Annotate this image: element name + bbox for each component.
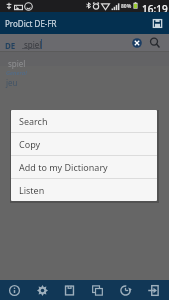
button[interactable]: Settings	[33, 281, 51, 299]
button[interactable]: Info	[5, 281, 23, 299]
staticText: General	[6, 69, 27, 77]
button[interactable]: Clipboard	[88, 281, 106, 299]
staticText: 80%	[121, 3, 132, 10]
button[interactable]: Bookmarks	[60, 281, 78, 299]
button[interactable]: Save	[151, 17, 164, 30]
button[interactable]: Add to my Dictionary	[11, 156, 157, 178]
button[interactable]: Copy	[11, 133, 157, 155]
staticText: jeu	[6, 77, 18, 88]
staticText: DE	[5, 40, 16, 51]
button[interactable]: Refresh	[116, 281, 134, 299]
staticText: Add to my Dictionary	[19, 161, 108, 173]
button[interactable]: Clear	[130, 36, 144, 50]
button[interactable]: Search	[148, 36, 162, 50]
staticText: spiel	[24, 39, 42, 50]
button[interactable]: Listen	[11, 179, 157, 201]
staticText: Copy	[19, 138, 41, 150]
staticText: spiel	[8, 58, 26, 69]
staticText: Search	[19, 115, 48, 127]
staticText: 16:19	[142, 2, 168, 14]
button[interactable]: Exit	[144, 281, 162, 299]
staticText: Listen	[19, 184, 45, 196]
button[interactable]: Search	[11, 110, 157, 132]
staticText: ProDict DE-FR	[5, 18, 57, 29]
